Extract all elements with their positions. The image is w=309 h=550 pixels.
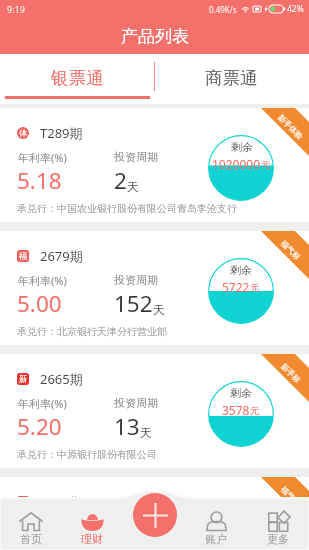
button[interactable]: Add — [133, 493, 177, 537]
button[interactable]: 福 — [0, 477, 309, 550]
staticText: 5722 — [222, 279, 250, 295]
button[interactable]: 福 — [0, 231, 309, 345]
staticText: 天 — [153, 302, 165, 317]
staticText: 天 — [140, 425, 152, 440]
staticText: 2665期 — [40, 370, 83, 388]
staticText: 5.18 — [17, 165, 62, 196]
staticText: 元 — [250, 282, 260, 294]
staticText: 0.49K/s — [209, 4, 237, 15]
staticText: 首页 — [20, 532, 42, 546]
staticText: 承兑行： — [17, 202, 57, 215]
staticText: 新手标 — [279, 361, 303, 385]
staticText: 1020000 — [212, 156, 261, 172]
staticText: 元 — [261, 159, 271, 171]
staticText: 2679期 — [40, 247, 83, 265]
staticText: 北京银行天津分行营业部 — [57, 325, 167, 338]
staticText: 42% — [287, 3, 304, 15]
staticText: 5.10 — [17, 534, 62, 550]
staticText: 年利率(%) — [18, 519, 67, 534]
staticText: 理财 — [81, 532, 103, 546]
staticText: 投资周期 — [114, 273, 158, 287]
staticText: 产品列表 — [121, 26, 189, 47]
staticText: 账户 — [205, 532, 227, 546]
button[interactable]: 账户 — [185, 490, 247, 550]
staticText: 剩余 — [230, 386, 252, 400]
staticText: 2678期 — [40, 493, 83, 511]
staticText: 更多 — [267, 532, 289, 546]
staticText: 5.00 — [17, 288, 62, 319]
staticText: 152 — [114, 288, 153, 319]
staticText: 剩余 — [231, 140, 253, 154]
button[interactable]: 理财 — [61, 490, 123, 550]
staticText: 中原银行股份有限公司 — [57, 448, 157, 461]
button[interactable]: 首页 — [0, 490, 61, 550]
staticText: 福气标 — [279, 238, 303, 262]
staticText: 剩余 — [230, 263, 252, 277]
staticText: 新 — [19, 374, 28, 385]
staticText: 银票通 — [51, 67, 104, 89]
staticText: 投资周期 — [114, 150, 158, 164]
staticText: 投资周期 — [114, 396, 158, 410]
button[interactable]: 商票通 — [154, 54, 309, 102]
button[interactable]: 新 — [0, 354, 309, 468]
staticText: 承兑行： — [17, 448, 57, 461]
staticText: 8000 — [222, 525, 250, 541]
staticText: 承兑行： — [17, 325, 57, 338]
staticText: 体 — [19, 128, 28, 139]
staticText: 天 — [140, 548, 152, 550]
staticText: 13 — [114, 411, 140, 442]
staticText: 新手体验 — [276, 112, 306, 142]
staticText: 中国农业银行股份有限公司青岛李沧支行 — [57, 202, 237, 215]
button[interactable]: 更多 — [247, 490, 309, 550]
staticText: 2 — [114, 165, 127, 196]
staticText: 年利率(%) — [18, 273, 67, 288]
staticText: 商票通 — [205, 67, 258, 89]
staticText: 福 — [19, 497, 28, 508]
staticText: 年利率(%) — [18, 150, 67, 165]
staticText: 福气标 — [279, 484, 303, 508]
staticText: 9:19 — [7, 3, 25, 15]
button[interactable]: 银票通 — [0, 54, 154, 102]
staticText: 天 — [127, 179, 139, 194]
button[interactable]: 体 — [0, 108, 309, 222]
staticText: 元 — [250, 405, 260, 417]
staticText: 投资周期 — [114, 519, 158, 533]
staticText: 年利率(%) — [18, 396, 67, 411]
staticText: 福 — [19, 251, 28, 262]
staticText: 5.20 — [17, 411, 62, 442]
staticText: T289期 — [40, 124, 83, 142]
staticText: 3578 — [222, 402, 250, 418]
